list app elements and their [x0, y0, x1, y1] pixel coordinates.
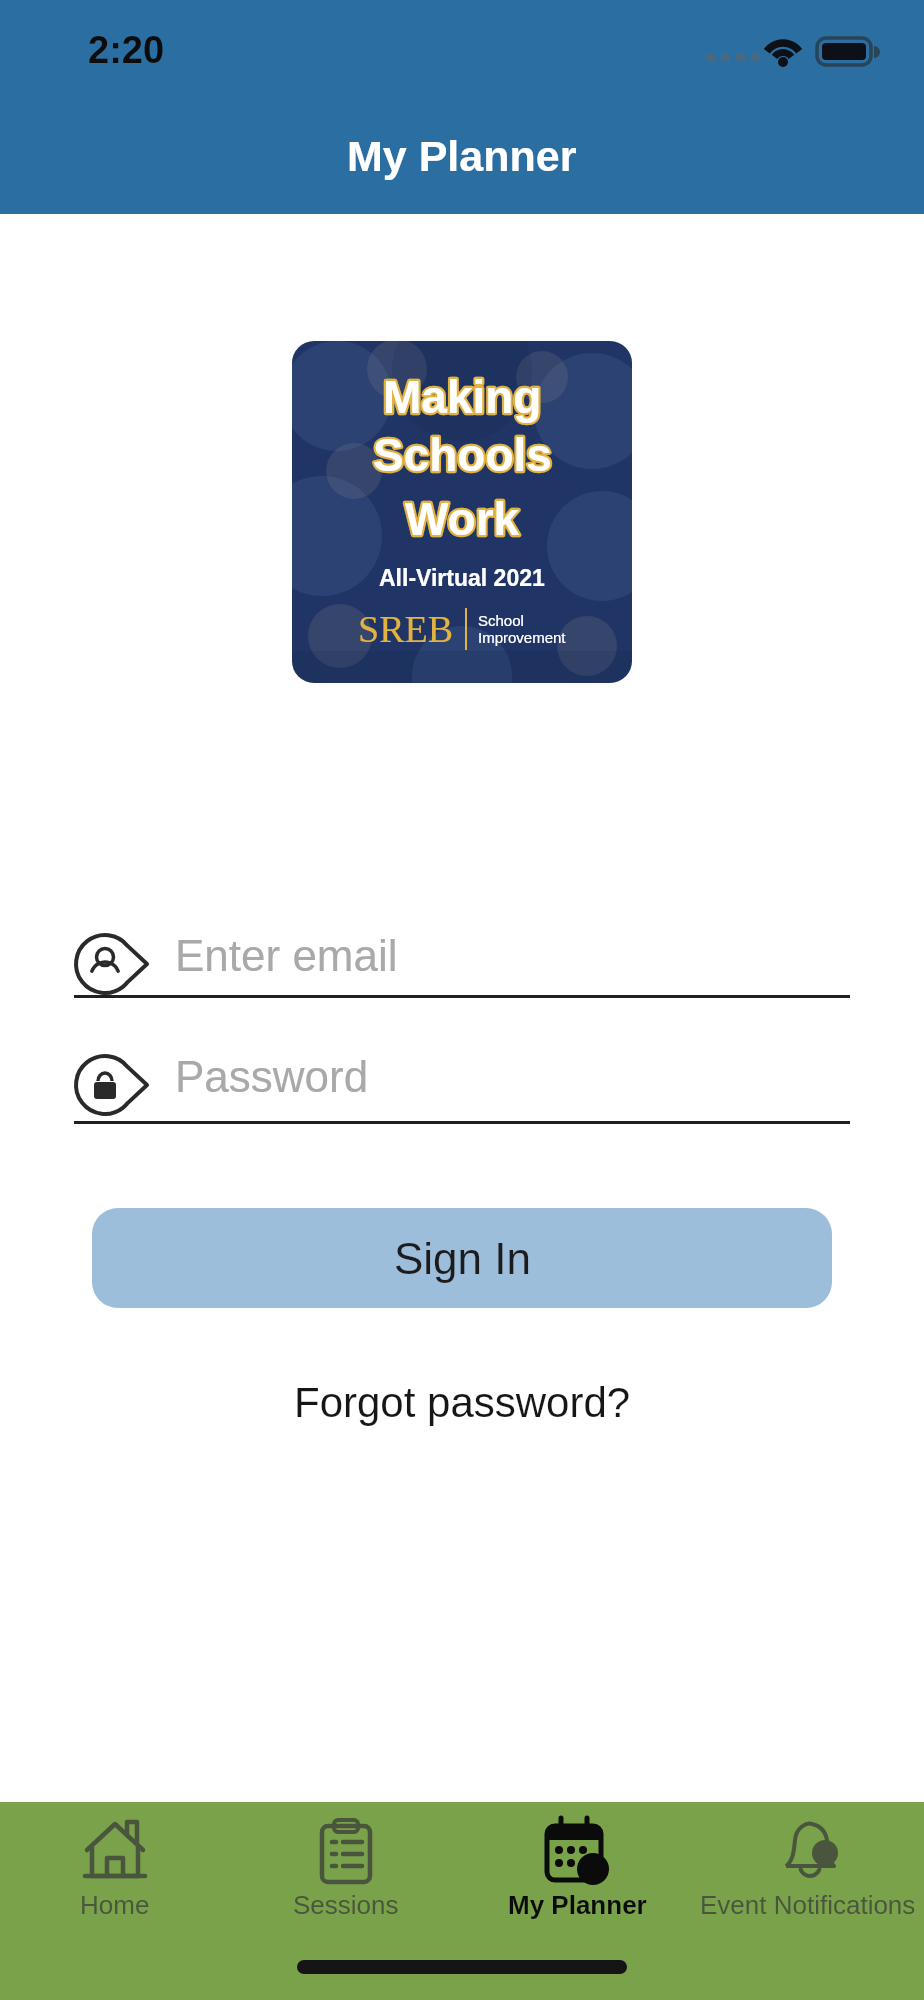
staticText: Enter email — [175, 931, 398, 980]
staticText: Home — [80, 1890, 150, 1919]
button[interactable]: Home — [0, 1818, 255, 1919]
staticText: My Planner — [347, 132, 577, 180]
button[interactable]: Sessions — [206, 1818, 486, 1919]
staticText: Forgot password? — [294, 1379, 631, 1426]
staticText: Schools — [373, 429, 552, 480]
staticText: All-Virtual 2021 — [379, 565, 545, 591]
button[interactable]: Sign In — [92, 1208, 832, 1308]
button[interactable] — [74, 1054, 144, 1124]
staticText: My Planner — [508, 1890, 647, 1919]
staticText: Work — [405, 493, 520, 544]
staticText: Event Notifications — [700, 1890, 916, 1919]
staticText: Making — [383, 371, 542, 422]
staticText: Work — [405, 493, 520, 544]
staticText: Improvement — [478, 629, 566, 646]
button[interactable] — [74, 933, 144, 1003]
staticText: Making — [383, 371, 542, 422]
button[interactable]: Forgot password? — [294, 1379, 631, 1426]
button[interactable]: Making — [292, 341, 632, 683]
button[interactable]: Event Notifications — [668, 1818, 924, 1919]
staticText: Schools — [373, 429, 552, 480]
staticText: School — [478, 612, 524, 629]
staticText: Sessions — [293, 1890, 399, 1919]
staticText: SREB — [358, 608, 454, 650]
staticText: 2:20 — [88, 29, 165, 71]
staticText: Sign In — [394, 1234, 531, 1283]
staticText: Password — [175, 1052, 369, 1101]
button[interactable]: My Planner — [437, 1818, 717, 1919]
